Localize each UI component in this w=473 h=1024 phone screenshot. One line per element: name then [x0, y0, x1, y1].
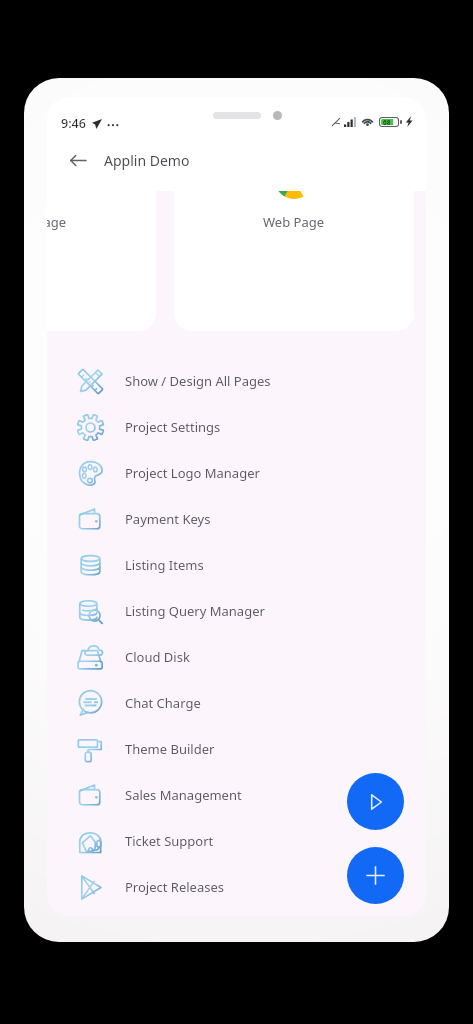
staticText: Ticket Support: [125, 832, 214, 850]
staticText: Project Releases: [125, 878, 225, 896]
staticText: Applin Demo: [104, 151, 190, 170]
staticText: Web Page: [263, 213, 325, 231]
button[interactable]: Run project: [347, 773, 404, 830]
staticText: 9:46: [61, 115, 86, 132]
button[interactable]: Project Logo Manager: [47, 450, 426, 496]
button[interactable]: Project Releases: [47, 864, 426, 910]
button[interactable]: Listing Items: [47, 542, 426, 588]
staticText: Payment Keys: [125, 510, 211, 528]
button[interactable]: Show / Design All Pages: [47, 358, 426, 404]
staticText: Project Logo Manager: [125, 464, 260, 482]
staticText: Listing Query Manager: [125, 602, 265, 620]
staticText: Show / Design All Pages: [125, 372, 271, 390]
button[interactable]: Web Page: [174, 191, 414, 331]
staticText: Listing Items: [125, 556, 204, 574]
button[interactable]: Theme Builder: [47, 726, 426, 772]
button[interactable]: Add: [347, 847, 404, 904]
button[interactable]: Payment Keys: [47, 496, 426, 542]
staticText: Sales Management: [125, 786, 242, 804]
button[interactable]: Project Settings: [47, 404, 426, 450]
staticText: Web Page: [47, 213, 67, 231]
button[interactable]: Back: [61, 143, 95, 177]
button[interactable]: Chat Charge: [47, 680, 426, 726]
staticText: Project Settings: [125, 418, 221, 436]
staticText: Theme Builder: [125, 740, 215, 758]
button[interactable]: Web Page: [47, 191, 156, 331]
button[interactable]: Cloud Disk: [47, 634, 426, 680]
staticText: Cloud Disk: [125, 648, 190, 666]
button[interactable]: Listing Query Manager: [47, 588, 426, 634]
staticText: Chat Charge: [125, 694, 201, 712]
staticText: 68: [383, 118, 391, 126]
button[interactable]: Ticket Support: [47, 818, 426, 864]
button[interactable]: Sales Management: [47, 772, 426, 818]
